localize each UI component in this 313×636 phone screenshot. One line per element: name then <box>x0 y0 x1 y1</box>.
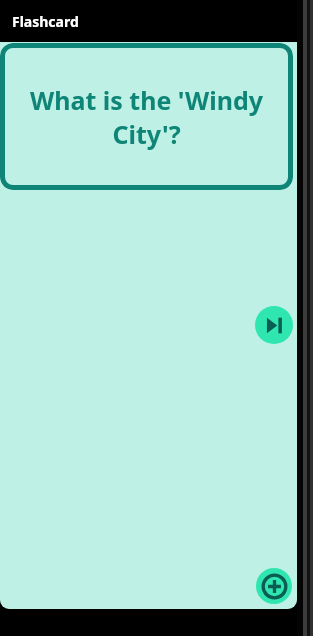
staticText: Flashcard <box>12 12 79 31</box>
button[interactable]: Add flashcard <box>256 568 292 604</box>
staticText: What is the 'Windy City'? <box>22 83 271 151</box>
button[interactable]: What is the 'Windy City'? <box>0 43 293 190</box>
button[interactable]: Next card <box>255 306 293 344</box>
